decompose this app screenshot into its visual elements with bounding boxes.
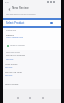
staticText: New Review: [12, 6, 29, 10]
staticText: Sub title: [5, 66, 13, 69]
button[interactable]: Back: [15, 95, 20, 100]
staticText: Input review: [5, 83, 19, 86]
staticText: Add a review note: [6, 36, 23, 39]
staticText: Service up code: [5, 71, 22, 74]
button[interactable]: Back: [6, 6, 12, 13]
staticText: Choose one: [6, 29, 16, 31]
staticText: Serve my settings: [6, 54, 26, 57]
staticText: Take note of this: [6, 51, 20, 53]
button[interactable]: Service up code: [3, 71, 61, 79]
button[interactable]: Home: [27, 95, 32, 100]
button[interactable]: Input review: [3, 82, 61, 88]
button[interactable]: Serve my settings: [3, 54, 61, 62]
staticText: Apps install: [5, 63, 18, 66]
staticText: Sub title: [6, 58, 14, 61]
staticText: 9:41: [5, 1, 9, 4]
staticText: Large X Volume: [10, 44, 25, 47]
button[interactable]: Open dropdown: [48, 20, 54, 26]
staticText: Sub title: [5, 74, 13, 77]
staticText: Details: [6, 33, 14, 36]
staticText: The final word is yours to make it: [6, 13, 36, 16]
button[interactable]: Recents: [40, 95, 45, 100]
staticText: Select Product: [6, 21, 25, 25]
button[interactable]: Apps install: [3, 62, 61, 70]
